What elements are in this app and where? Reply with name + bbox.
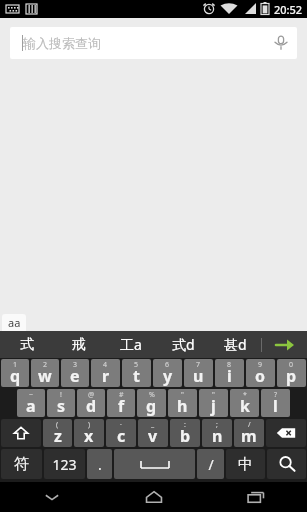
- button[interactable]: More candidates: [261, 331, 307, 358]
- button[interactable]: Hide keyboard: [0, 482, 103, 512]
- button[interactable]: 戒: [53, 331, 105, 358]
- staticText: c: [117, 425, 126, 447]
- button[interactable]: ?: [261, 389, 290, 417]
- staticText: 式: [20, 336, 34, 354]
- staticText: ;: [216, 420, 218, 430]
- button[interactable]: .: [87, 449, 112, 479]
- button[interactable]: 4: [91, 359, 120, 387]
- button[interactable]: Home: [103, 482, 205, 512]
- button[interactable]: #: [107, 389, 135, 417]
- staticText: @: [88, 390, 95, 400]
- button[interactable]: !: [47, 389, 75, 417]
- staticText: :: [184, 420, 186, 430]
- staticText: v: [148, 425, 158, 447]
- staticText: 3: [73, 360, 78, 370]
- button[interactable]: 中: [226, 449, 265, 479]
- button[interactable]: Backspace: [266, 419, 306, 447]
- staticText: 甚d: [224, 335, 247, 354]
- staticText: d: [86, 395, 97, 417]
- button[interactable]: @: [77, 389, 105, 417]
- staticText: z: [54, 425, 62, 447]
- staticText: 0: [289, 360, 294, 370]
- staticText: i: [227, 365, 232, 387]
- staticText: ): [88, 420, 91, 430]
- staticText: 中: [238, 455, 253, 474]
- button[interactable]: 123: [44, 449, 85, 479]
- staticText: (: [56, 420, 59, 430]
- button[interactable]: 5: [122, 359, 151, 387]
- staticText: 戒: [72, 336, 86, 354]
- staticText: ~: [29, 390, 34, 400]
- button[interactable]: 式: [0, 331, 53, 358]
- staticText: o: [255, 365, 266, 387]
- button[interactable]: ;: [202, 419, 232, 447]
- button[interactable]: :: [170, 419, 200, 447]
- button[interactable]: /: [197, 449, 224, 479]
- staticText: j: [211, 395, 216, 417]
- staticText: 输入搜索查询: [23, 35, 101, 51]
- button[interactable]: aa: [2, 314, 26, 331]
- button[interactable]: (: [43, 419, 72, 447]
- staticText: _: [151, 420, 155, 430]
- staticText: g: [146, 395, 157, 417]
- staticText: aa: [8, 315, 21, 330]
- staticText: f: [118, 395, 125, 417]
- button[interactable]: Shift: [1, 419, 41, 447]
- staticText: y: [163, 365, 173, 387]
- staticText: ": [181, 390, 184, 400]
- button[interactable]: *: [230, 389, 259, 417]
- staticText: 8: [227, 360, 232, 370]
- button[interactable]: 1: [1, 359, 29, 387]
- button[interactable]: ): [74, 419, 104, 447]
- staticText: 工a: [120, 335, 142, 354]
- button[interactable]: ~: [17, 389, 45, 417]
- button[interactable]: 0: [277, 359, 306, 387]
- staticText: s: [57, 395, 66, 417]
- button[interactable]: %: [137, 389, 166, 417]
- staticText: ?: [274, 390, 278, 400]
- staticText: #: [119, 390, 124, 400]
- button[interactable]: 符: [1, 449, 42, 479]
- button[interactable]: 9: [246, 359, 275, 387]
- button[interactable]: Voice search: [265, 27, 297, 59]
- staticText: !: [60, 390, 62, 400]
- staticText: x: [84, 425, 94, 447]
- staticText: m: [241, 425, 257, 447]
- staticText: 1: [13, 360, 18, 370]
- staticText: u: [193, 365, 204, 387]
- button[interactable]: ": [199, 389, 228, 417]
- staticText: 123: [52, 455, 77, 474]
- button[interactable]: Search: [267, 449, 306, 479]
- staticText: t: [133, 365, 140, 387]
- staticText: 2: [43, 360, 48, 370]
- button[interactable]: /: [234, 419, 264, 447]
- staticText: k: [240, 395, 250, 417]
- staticText: a: [26, 395, 36, 417]
- staticText: 9: [258, 360, 263, 370]
- button[interactable]: ·: [106, 419, 136, 447]
- button[interactable]: 8: [215, 359, 244, 387]
- staticText: %: [149, 390, 155, 400]
- staticText: n: [212, 425, 223, 447]
- staticText: 20:52: [274, 2, 303, 17]
- button[interactable]: Space: [114, 449, 195, 479]
- button[interactable]: 3: [61, 359, 89, 387]
- staticText: 4: [103, 360, 108, 370]
- staticText: q: [10, 365, 21, 387]
- button[interactable]: 式d: [157, 331, 209, 358]
- button[interactable]: _: [138, 419, 168, 447]
- staticText: 式d: [172, 335, 195, 354]
- staticText: *: [243, 390, 247, 400]
- button[interactable]: 工a: [105, 331, 157, 358]
- button[interactable]: Recents: [205, 482, 307, 512]
- staticText: w: [38, 365, 52, 387]
- button[interactable]: ": [168, 389, 197, 417]
- staticText: /: [248, 420, 251, 430]
- staticText: 符: [14, 455, 29, 474]
- button[interactable]: 6: [153, 359, 182, 387]
- staticText: b: [180, 425, 191, 447]
- button[interactable]: 2: [31, 359, 59, 387]
- button[interactable]: 甚d: [209, 331, 261, 358]
- button[interactable]: 输入搜索查询: [10, 27, 297, 59]
- button[interactable]: 7: [184, 359, 213, 387]
